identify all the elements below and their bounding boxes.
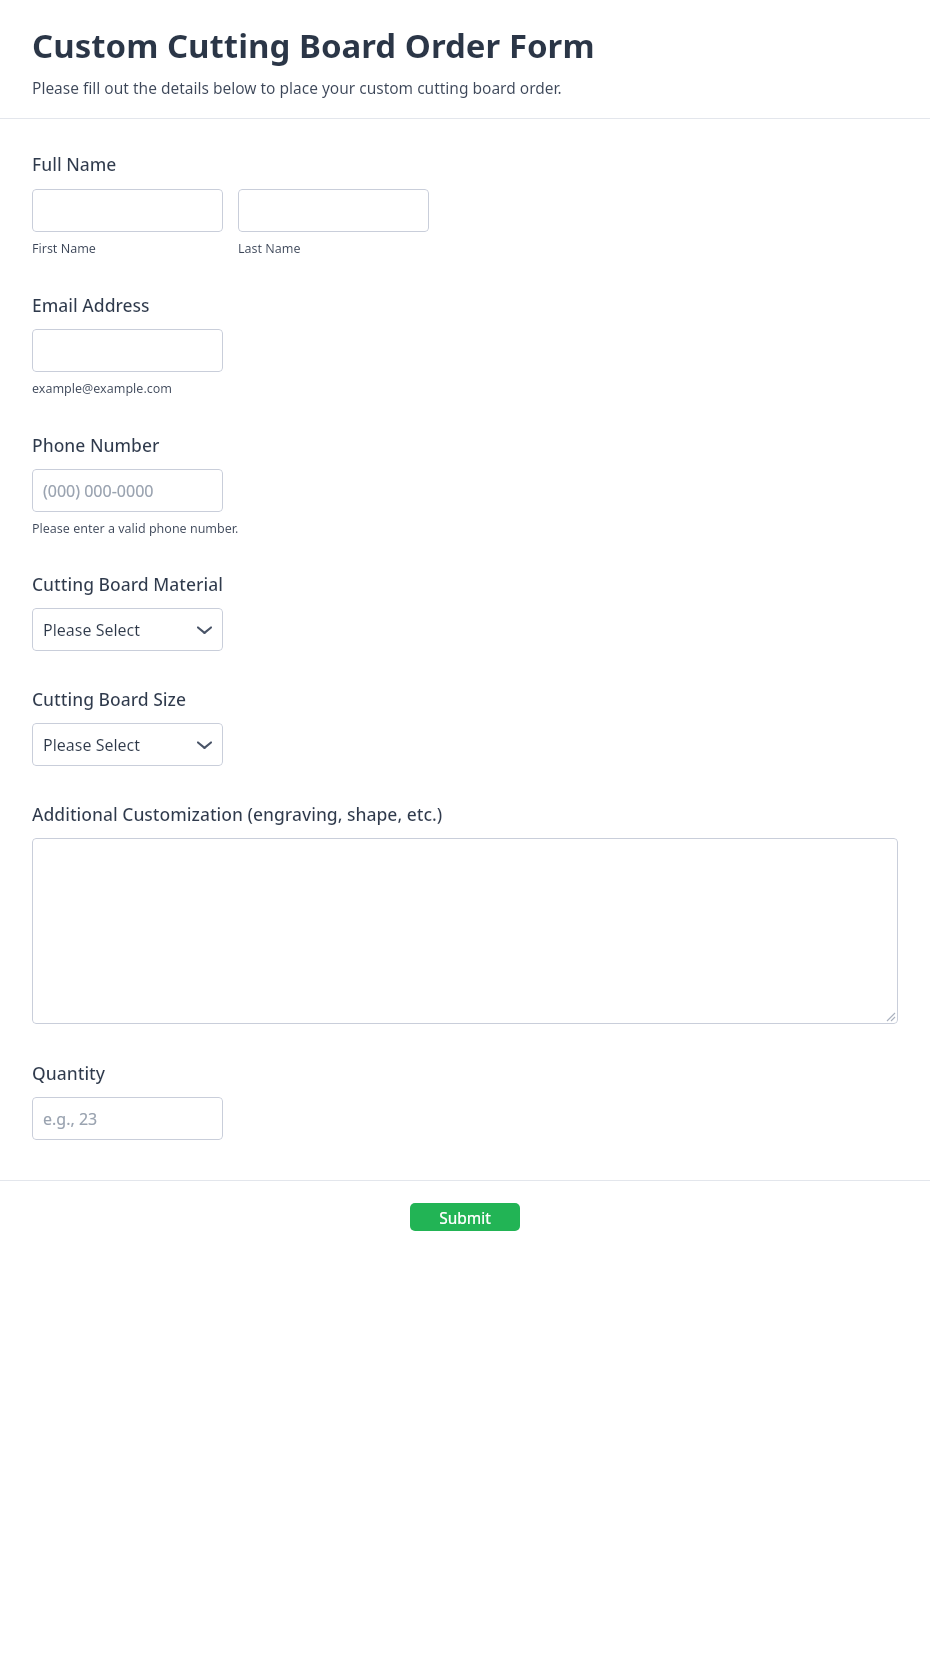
- staticText: Last Name: [238, 240, 301, 257]
- button[interactable]: Please Select: [32, 723, 223, 766]
- staticText: Full Name: [32, 152, 117, 176]
- button[interactable]: [32, 838, 898, 1024]
- staticText: Email Address: [32, 293, 150, 317]
- other: Open dropdown: [198, 626, 211, 634]
- staticText: e.g., 23: [43, 1108, 98, 1130]
- staticText: Phone Number: [32, 433, 160, 457]
- staticText: (000) 000-0000: [43, 480, 154, 502]
- staticText: Cutting Board Size: [32, 687, 186, 711]
- staticText: Please enter a valid phone number.: [32, 520, 239, 537]
- staticText: Additional Customization (engraving, sha…: [32, 802, 443, 826]
- staticText: Cutting Board Material: [32, 572, 223, 596]
- button[interactable]: Submit: [410, 1203, 520, 1231]
- staticText: Please fill out the details below to pla…: [32, 77, 562, 98]
- staticText: Custom Cutting Board Order Form: [32, 23, 595, 68]
- button[interactable]: [32, 329, 223, 372]
- button[interactable]: e.g., 23: [32, 1097, 223, 1140]
- staticText: Submit: [439, 1207, 491, 1228]
- button[interactable]: (000) 000-0000: [32, 469, 223, 512]
- staticText: Quantity: [32, 1061, 106, 1085]
- button[interactable]: [32, 189, 223, 232]
- button[interactable]: [238, 189, 429, 232]
- button[interactable]: Please Select: [32, 608, 223, 651]
- staticText: Please Select: [43, 619, 141, 641]
- staticText: example@example.com: [32, 380, 172, 397]
- staticText: First Name: [32, 240, 96, 257]
- staticText: Please Select: [43, 734, 141, 756]
- other: Open dropdown: [198, 741, 211, 749]
